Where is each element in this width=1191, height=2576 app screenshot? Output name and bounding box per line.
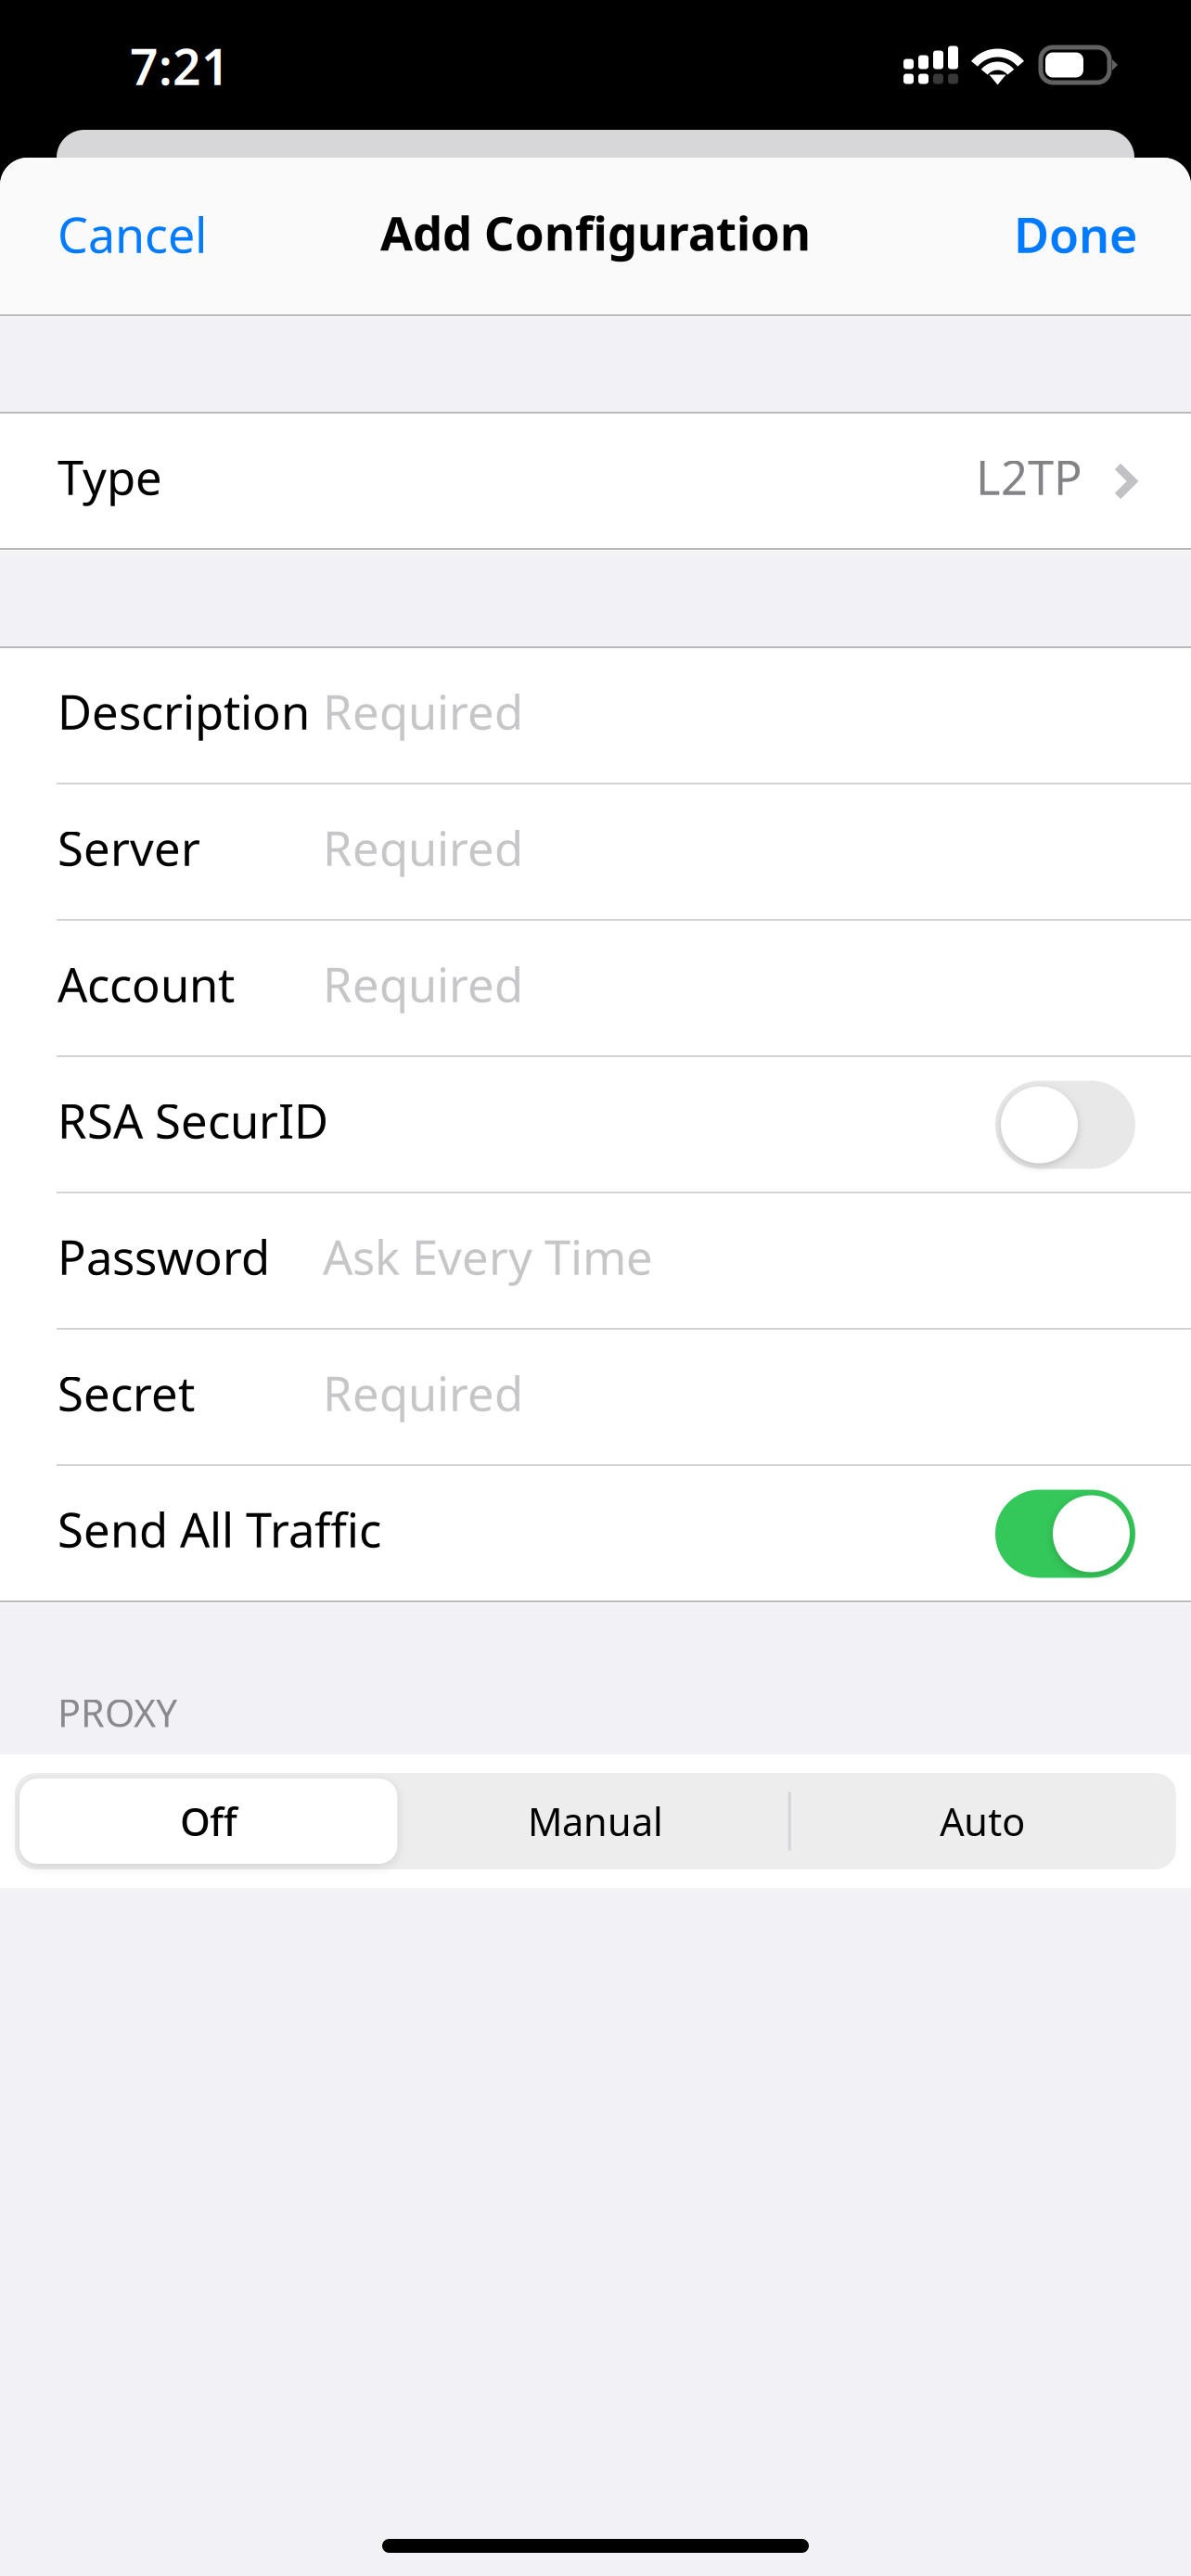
button[interactable]: Type bbox=[0, 414, 1191, 548]
staticText: Required bbox=[323, 953, 523, 1015]
button[interactable]: Description bbox=[0, 649, 1191, 783]
button[interactable]: Done bbox=[915, 158, 1191, 314]
staticText: Secret bbox=[58, 1362, 195, 1424]
staticText: 7:21 bbox=[130, 33, 230, 99]
staticText: Send All Traffic bbox=[58, 1498, 381, 1560]
button[interactable]: Manual bbox=[402, 1773, 789, 1869]
button[interactable]: Account bbox=[0, 922, 1191, 1055]
button[interactable]: Off bbox=[15, 1773, 402, 1869]
staticText: Type bbox=[58, 445, 162, 508]
button[interactable]: Send All Traffic bbox=[0, 1467, 1191, 1600]
staticText: Password bbox=[58, 1225, 270, 1288]
staticText: Auto bbox=[940, 1796, 1025, 1847]
button[interactable]: Password bbox=[0, 1194, 1191, 1328]
staticText: L2TP bbox=[976, 445, 1082, 508]
button[interactable]: RSA SecurID bbox=[0, 1058, 1191, 1192]
staticText: Required bbox=[323, 816, 523, 879]
staticText: Add Configuration bbox=[380, 201, 811, 264]
staticText: Done bbox=[1014, 202, 1137, 266]
staticText: PROXY bbox=[58, 1687, 177, 1738]
staticText: Description bbox=[58, 680, 310, 742]
staticText: Manual bbox=[528, 1796, 663, 1847]
staticText: Off bbox=[180, 1796, 237, 1847]
button[interactable]: Server bbox=[0, 785, 1191, 919]
button[interactable]: Secret bbox=[0, 1331, 1191, 1464]
button[interactable]: Cancel bbox=[0, 158, 280, 314]
staticText: Server bbox=[58, 816, 200, 879]
staticText: Required bbox=[323, 1362, 523, 1424]
staticText: Required bbox=[323, 680, 523, 742]
staticText: Ask Every Time bbox=[323, 1225, 653, 1288]
staticText: Cancel bbox=[58, 202, 207, 266]
staticText: Account bbox=[58, 953, 235, 1015]
button[interactable]: Auto bbox=[789, 1773, 1176, 1869]
staticText: RSA SecurID bbox=[58, 1089, 328, 1151]
